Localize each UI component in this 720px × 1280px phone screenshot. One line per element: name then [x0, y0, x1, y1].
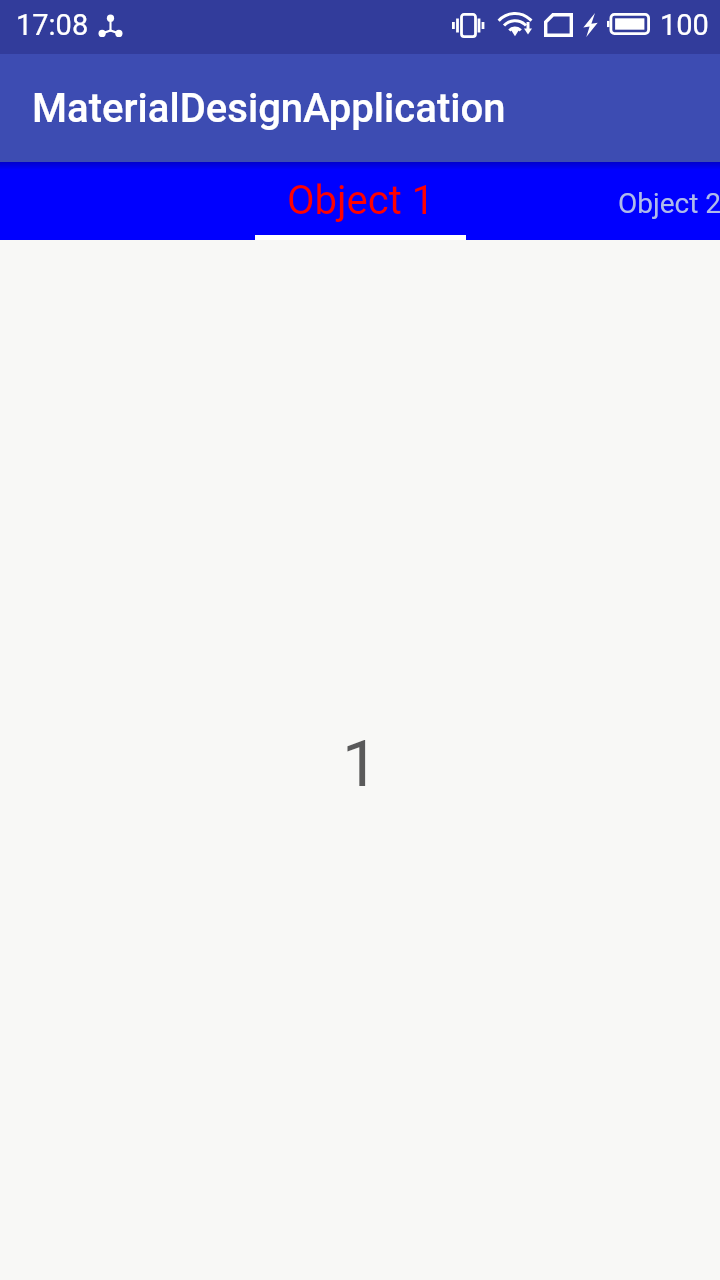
other: Battery — [607, 13, 650, 35]
staticText: MaterialDesignApplication — [32, 85, 506, 132]
other: Wi-Fi — [500, 7, 534, 39]
button[interactable]: Object 1 — [255, 162, 466, 240]
other: SIM card — [544, 13, 573, 37]
staticText: 100 — [660, 8, 709, 42]
staticText: 1 — [342, 726, 379, 802]
button[interactable]: Object 2 — [466, 162, 720, 240]
other: Charging — [583, 13, 598, 37]
staticText: Object 2 — [618, 187, 720, 220]
staticText: 17:08 — [16, 8, 89, 42]
other: Vibrate — [452, 13, 484, 38]
other: Connected devices — [98, 14, 123, 37]
staticText: Object 1 — [287, 177, 435, 224]
